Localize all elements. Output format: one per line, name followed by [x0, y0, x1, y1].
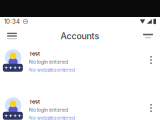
staticText: Accounts	[60, 31, 99, 41]
staticText: Test	[29, 50, 40, 57]
staticText: Test	[29, 98, 40, 105]
staticText: 10:34	[4, 18, 20, 25]
button[interactable]: Test	[0, 46, 160, 94]
staticText: No login entered	[29, 107, 68, 113]
staticText: No websites entered	[29, 115, 75, 120]
button[interactable]: Sort	[138, 27, 158, 45]
button[interactable]: Test	[0, 94, 160, 120]
staticText: No websites entered	[29, 67, 75, 73]
button[interactable]: Navigation menu	[2, 27, 22, 45]
staticText: No login entered	[29, 59, 68, 65]
